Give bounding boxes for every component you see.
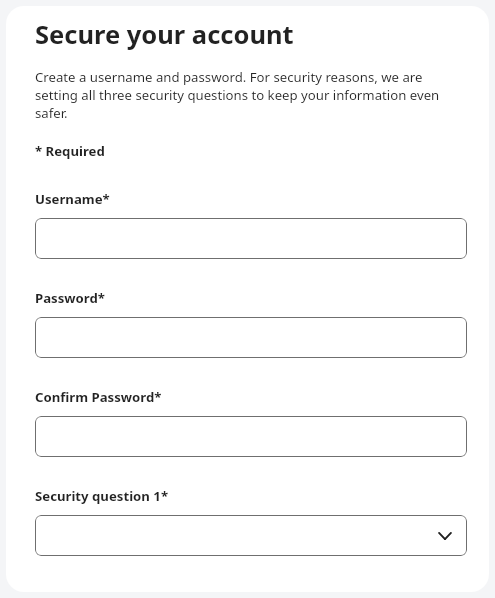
staticText: Security question 1* [35,487,169,505]
staticText: Confirm Password* [35,388,162,406]
button[interactable]: Security question 1* dropdown [35,515,467,556]
staticText: Password* [35,289,105,307]
staticText: Create a username and password. For secu… [35,68,455,122]
staticText: * Required [35,142,105,160]
button[interactable]: Password* text field [35,317,467,358]
button[interactable]: Username* text field [35,218,467,259]
button[interactable]: Confirm Password* text field [35,416,467,457]
staticText: Secure your account [35,20,294,50]
staticText: Username* [35,190,110,208]
